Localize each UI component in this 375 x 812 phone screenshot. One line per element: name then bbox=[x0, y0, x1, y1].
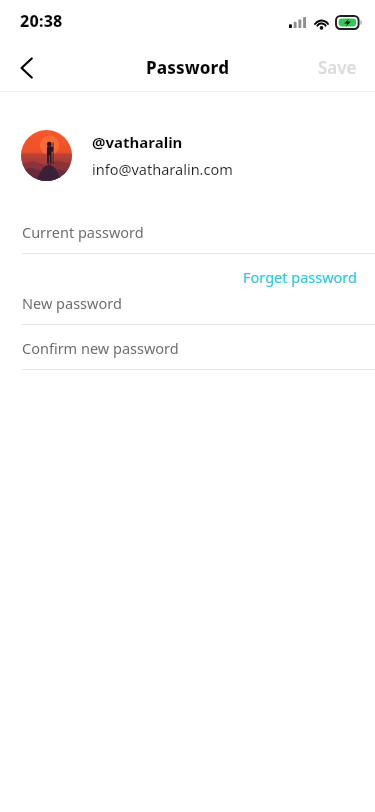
button[interactable]: Confirm new password bbox=[0, 338, 375, 370]
button[interactable]: Current password bbox=[0, 222, 375, 254]
staticText: Forget password bbox=[243, 267, 357, 287]
staticText: @vatharalin bbox=[92, 132, 183, 152]
staticText: Current password bbox=[22, 222, 144, 242]
button[interactable]: Save bbox=[300, 45, 375, 90]
button[interactable]: Back bbox=[4, 46, 48, 90]
staticText: 20:38 bbox=[20, 10, 63, 32]
button[interactable]: New password bbox=[0, 293, 375, 325]
button[interactable]: @vatharalin bbox=[0, 126, 375, 185]
staticText: New password bbox=[22, 293, 122, 313]
staticText: Confirm new password bbox=[22, 338, 179, 358]
button[interactable]: Forget password bbox=[225, 266, 375, 293]
staticText: Password bbox=[146, 56, 230, 79]
staticText: info@vatharalin.com bbox=[92, 159, 233, 179]
staticText: Save bbox=[318, 56, 357, 79]
